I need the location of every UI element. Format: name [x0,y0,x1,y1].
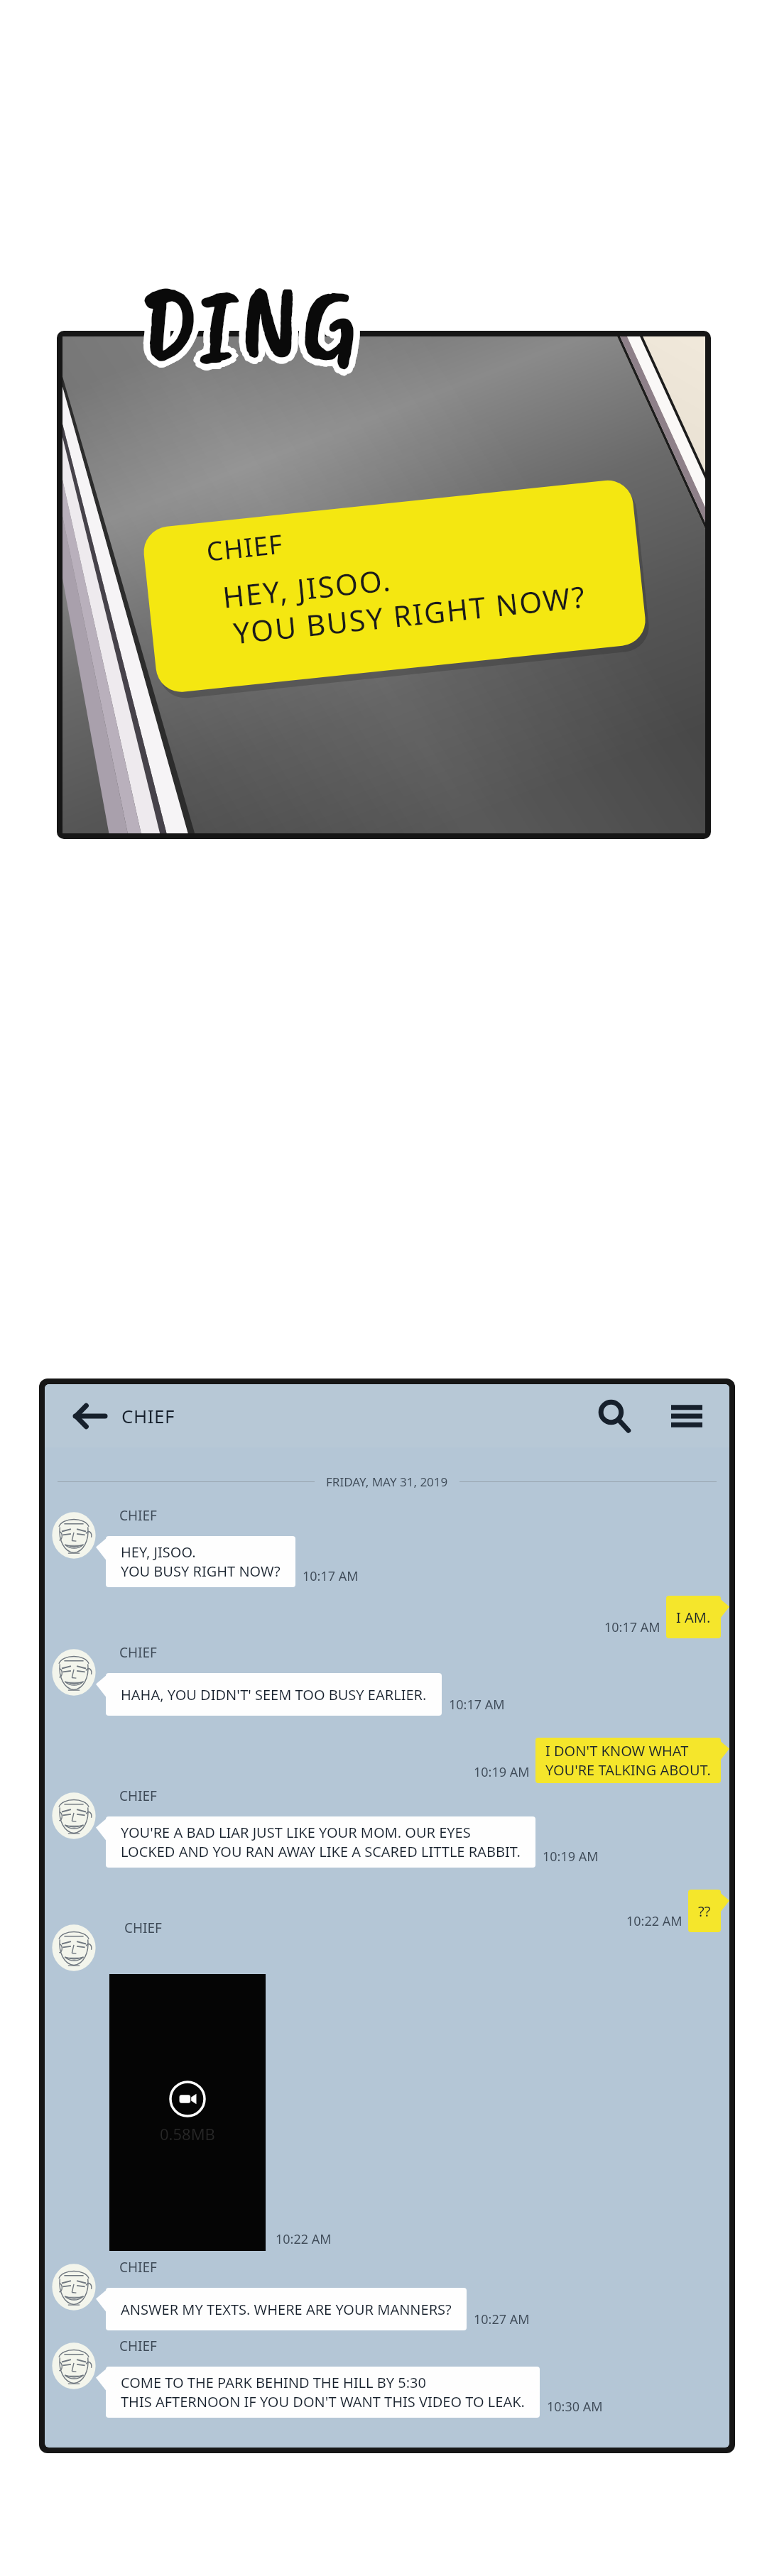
staticText: DING [137,260,357,396]
button[interactable]: Back [67,1394,111,1438]
staticText: DING [139,260,359,396]
staticText: DING [139,256,359,392]
button[interactable]: HAHA, YOU DIDN'T' SEEM TOO BUSY EARLIER. [106,1673,442,1716]
button[interactable]: HEY, JISOO. [106,1536,295,1587]
button[interactable]: COME TO THE PARK BEHIND THE HILL BY 5:30 [106,2367,540,2418]
staticText: DING [141,256,361,392]
staticText: HEY, JISOO. [221,559,394,617]
staticText: CHIEF [119,1643,157,1662]
staticText: DING [143,260,364,396]
staticText: DING [137,256,357,392]
staticText: DING [135,253,355,390]
staticText: DING [137,258,357,394]
staticText: DING [141,253,361,390]
staticText: DING [139,256,359,392]
button[interactable]: YOU'RE A BAD LIAR JUST LIKE YOUR MOM. OU… [106,1816,535,1868]
staticText: 10:22 AM [276,2230,332,2248]
button[interactable]: Search [587,1389,641,1443]
button[interactable]: Play video [109,1974,266,2251]
staticText: DING [141,260,361,396]
staticText: DING [133,256,353,392]
staticText: ANSWER MY TEXTS. WHERE ARE YOUR MANNERS? [121,2300,452,2319]
staticText: 10:30 AM [547,2398,603,2416]
button[interactable]: I AM. [666,1596,721,1638]
staticText: YOU BUSY RIGHT NOW? [121,1562,281,1581]
button[interactable]: Menu [660,1389,714,1443]
staticText: 10:27 AM [474,2311,530,2328]
staticText: DING [135,260,355,396]
staticText: I DON'T KNOW WHAT [545,1741,689,1760]
staticText: DING [137,251,357,388]
staticText: I AM. [676,1608,711,1627]
staticText: DING [139,253,359,390]
staticText: DING [143,251,364,388]
staticText: THIS AFTERNOON IF YOU DON'T WANT THIS VI… [121,2392,525,2411]
staticText: DING [135,256,355,392]
staticText: DING [139,262,359,398]
staticText: CHIEF [119,2337,157,2355]
staticText: CHIEF [121,1403,175,1428]
staticText: CHIEF [119,1787,157,1805]
staticText: DING [139,249,359,385]
staticText: DING [143,256,364,392]
staticText: 10:17 AM [449,1696,505,1714]
staticText: DING [137,253,357,390]
staticText: DING [135,251,355,388]
staticText: 10:19 AM [543,1848,599,1865]
staticText: DING [135,258,355,394]
staticText: LOCKED AND YOU RAN AWAY LIKE A SCARED LI… [121,1842,521,1861]
staticText: DING [143,253,364,390]
staticText: DING [141,251,361,388]
staticText: YOU'RE TALKING ABOUT. [545,1760,711,1780]
button[interactable]: I DON'T KNOW WHAT [535,1738,721,1783]
staticText: DING [146,256,366,392]
staticText: CHIEF [124,1919,162,1937]
button[interactable]: ANSWER MY TEXTS. WHERE ARE YOUR MANNERS? [106,2288,467,2330]
staticText: ?? [698,1902,711,1921]
staticText: FRIDAY, MAY 31, 2019 [326,1474,448,1490]
staticText: CHIEF [119,1506,157,1525]
staticText: HAHA, YOU DIDN'T' SEEM TOO BUSY EARLIER. [121,1685,427,1704]
staticText: 10:22 AM [626,1912,682,1930]
staticText: DING [139,251,359,388]
staticText: CHIEF [205,525,285,568]
staticText: DING [141,258,361,394]
staticText: HEY, JISOO. [121,1542,196,1562]
staticText: YOU BUSY RIGHT NOW? [232,576,588,653]
button[interactable]: ?? [688,1890,721,1932]
staticText: DING [139,258,359,394]
staticText: 10:17 AM [604,1618,660,1636]
staticText: DING [143,258,364,394]
staticText: COME TO THE PARK BEHIND THE HILL BY 5:30 [121,2373,426,2392]
staticText: 10:19 AM [474,1763,530,1781]
staticText: YOU'RE A BAD LIAR JUST LIKE YOUR MOM. OU… [121,1823,471,1842]
staticText: CHIEF [119,2258,157,2276]
staticText: 0.58MB [160,2123,215,2144]
staticText: 10:17 AM [303,1567,359,1585]
